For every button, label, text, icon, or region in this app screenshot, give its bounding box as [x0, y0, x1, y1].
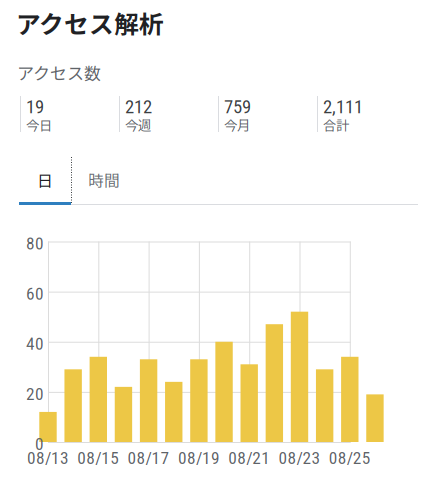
staticText: 80	[26, 233, 44, 254]
staticText: 08/13	[27, 448, 69, 468]
button[interactable]: 2,111	[317, 91, 416, 137]
staticText: 今日	[26, 115, 52, 134]
staticText: 19	[26, 96, 44, 118]
staticText: 0	[35, 434, 44, 454]
button[interactable]: 212	[119, 91, 218, 137]
staticText: 40	[26, 334, 44, 354]
staticText: 08/17	[128, 448, 170, 468]
staticText: アクセス数	[17, 60, 101, 85]
staticText: 2,111	[323, 96, 363, 118]
staticText: 今週	[125, 115, 151, 134]
staticText: 08/15	[77, 448, 119, 468]
staticText: 合計	[323, 115, 349, 134]
staticText: 08/25	[329, 448, 371, 468]
staticText: アクセス解析	[16, 5, 164, 41]
staticText: 759	[224, 96, 251, 118]
button[interactable]: 19	[20, 91, 119, 137]
staticText: 日	[37, 169, 53, 191]
button[interactable]: 時間	[73, 156, 135, 204]
staticText: 212	[125, 96, 152, 118]
staticText: 今月	[224, 115, 250, 134]
staticText: 20	[26, 384, 44, 404]
staticText: 時間	[88, 169, 120, 191]
staticText: 08/19	[178, 448, 220, 468]
staticText: 08/21	[228, 448, 270, 468]
staticText: 08/23	[278, 448, 320, 468]
button[interactable]: 日	[19, 156, 71, 204]
button[interactable]: 759	[218, 91, 317, 137]
staticText: 60	[26, 284, 44, 304]
